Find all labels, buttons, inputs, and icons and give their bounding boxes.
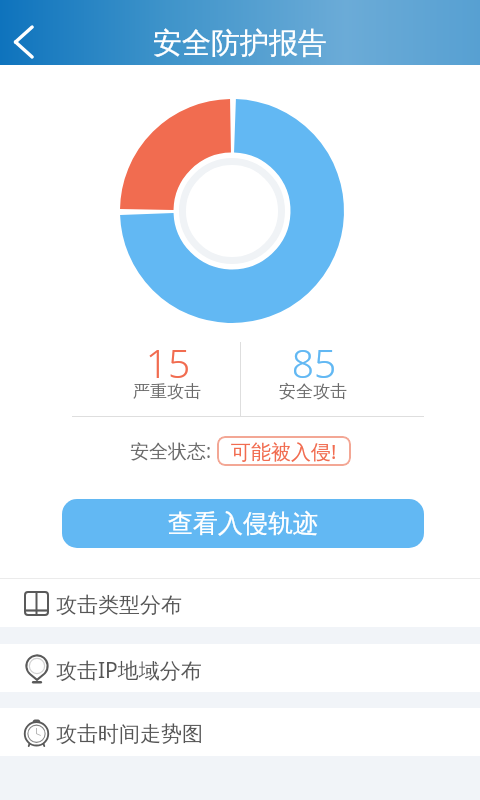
button[interactable]: 攻击时间走势图 bbox=[0, 708, 480, 756]
button[interactable]: 15 bbox=[97, 342, 237, 406]
staticText: 严重攻击 bbox=[97, 381, 237, 402]
staticText: 攻击时间走势图 bbox=[56, 721, 203, 747]
button[interactable]: 攻击类型分布 bbox=[0, 579, 480, 627]
button[interactable]: 查看入侵轨迹 bbox=[62, 499, 424, 548]
staticText: 15 bbox=[98, 336, 238, 389]
staticText: 85 bbox=[244, 336, 384, 389]
staticText: 攻击IP地域分布 bbox=[56, 656, 202, 685]
staticText: 查看入侵轨迹 bbox=[168, 508, 318, 539]
staticText: 安全防护报告 bbox=[0, 25, 480, 62]
button[interactable]: Back bbox=[0, 18, 48, 66]
button[interactable]: 攻击IP地域分布 bbox=[0, 644, 480, 692]
staticText: 安全攻击 bbox=[243, 381, 383, 402]
button[interactable]: 85 bbox=[243, 342, 383, 406]
staticText: 可能被入侵! bbox=[231, 438, 337, 465]
staticText: 攻击类型分布 bbox=[56, 592, 182, 618]
staticText: 安全状态: bbox=[130, 438, 212, 464]
